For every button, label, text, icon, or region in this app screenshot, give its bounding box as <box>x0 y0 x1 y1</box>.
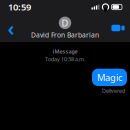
staticText: David Fron Barbarian <box>31 31 99 39</box>
button[interactable]: Back <box>3 19 19 37</box>
staticText: iMessage <box>52 48 77 55</box>
staticText: ‹ <box>7 15 14 41</box>
button[interactable]: FaceTime <box>109 20 127 36</box>
staticText: Today 10:38 a.m. <box>45 56 85 63</box>
staticText: D <box>61 17 68 29</box>
staticText: Magic <box>97 71 122 84</box>
staticText: 10:59 <box>8 1 31 13</box>
staticText: Delivered <box>102 87 125 94</box>
